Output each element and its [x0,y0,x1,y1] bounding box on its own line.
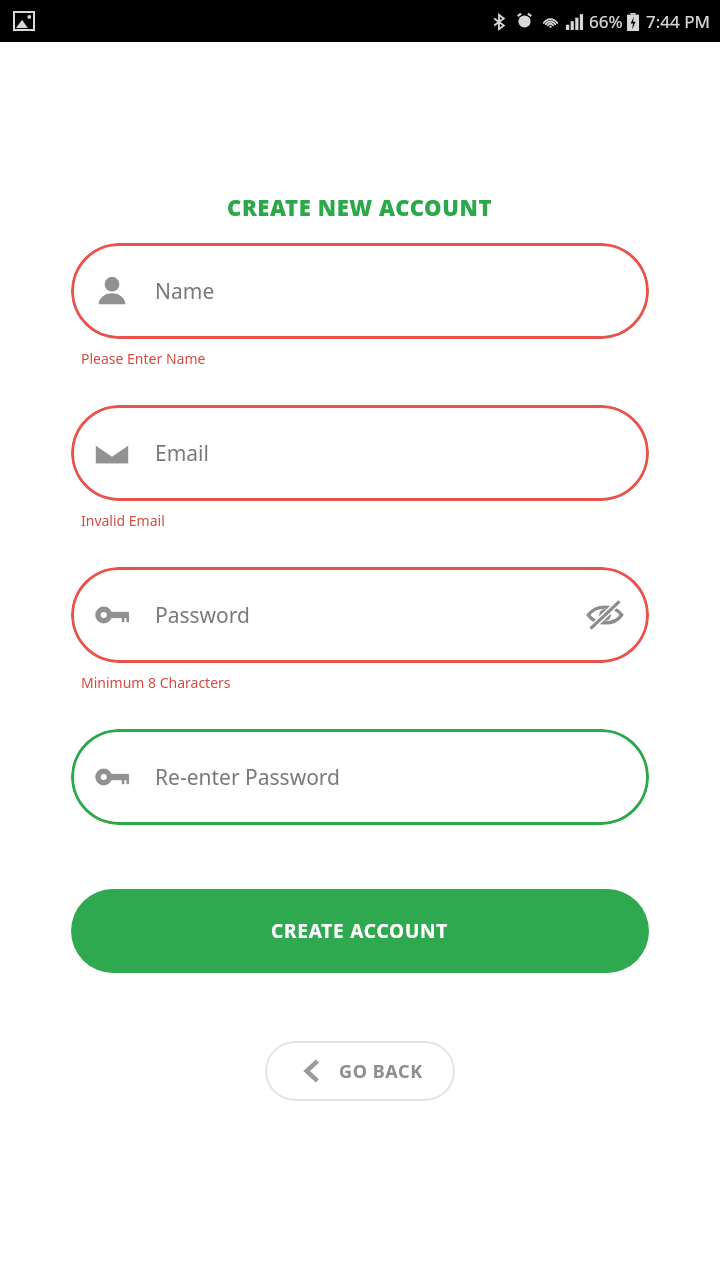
staticText: Password [155,601,583,630]
staticText: 7:44 PM [646,10,710,33]
staticText: CREATE ACCOUNT [271,918,449,944]
staticText: 66% [589,10,623,33]
button[interactable]: Re-enter Password [71,729,649,825]
staticText: Email [155,439,627,468]
button[interactable]: Name [71,243,649,339]
staticText: Name [155,277,627,306]
staticText: Invalid Email [81,511,165,530]
staticText: GO BACK [339,1059,423,1084]
button[interactable]: GO BACK [265,1041,455,1101]
button[interactable]: Show password [583,593,627,637]
staticText: Please Enter Name [81,349,206,368]
staticText: CREATE NEW ACCOUNT [227,192,493,222]
staticText: Re-enter Password [155,763,627,792]
button[interactable]: Password [71,567,649,663]
button[interactable]: CREATE ACCOUNT [71,889,649,973]
staticText: Minimum 8 Characters [81,673,231,692]
button[interactable]: Email [71,405,649,501]
